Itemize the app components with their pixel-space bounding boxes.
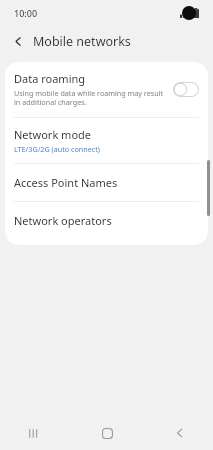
button[interactable]: Access Point Names: [5, 164, 208, 201]
button[interactable]: Network mode: [5, 118, 208, 163]
staticText: LTE/3G/2G (auto connect): [14, 144, 100, 154]
staticText: Network operators: [14, 213, 112, 228]
staticText: Using mobile data while roaming may resu…: [14, 88, 167, 108]
button[interactable]: Data roaming: [5, 62, 208, 117]
button[interactable]: Data roaming toggle: [173, 82, 199, 97]
staticText: Access Point Names: [14, 175, 118, 190]
staticText: Mobile networks: [33, 33, 131, 50]
button[interactable]: Network operators: [5, 202, 208, 239]
button[interactable]: Recents: [18, 418, 48, 448]
staticText: 10:00: [14, 7, 38, 19]
button[interactable]: Back: [7, 30, 29, 52]
staticText: Network mode: [14, 127, 92, 142]
button[interactable]: Home: [92, 418, 122, 448]
staticText: Data roaming: [14, 71, 86, 86]
button[interactable]: Back: [165, 418, 195, 448]
